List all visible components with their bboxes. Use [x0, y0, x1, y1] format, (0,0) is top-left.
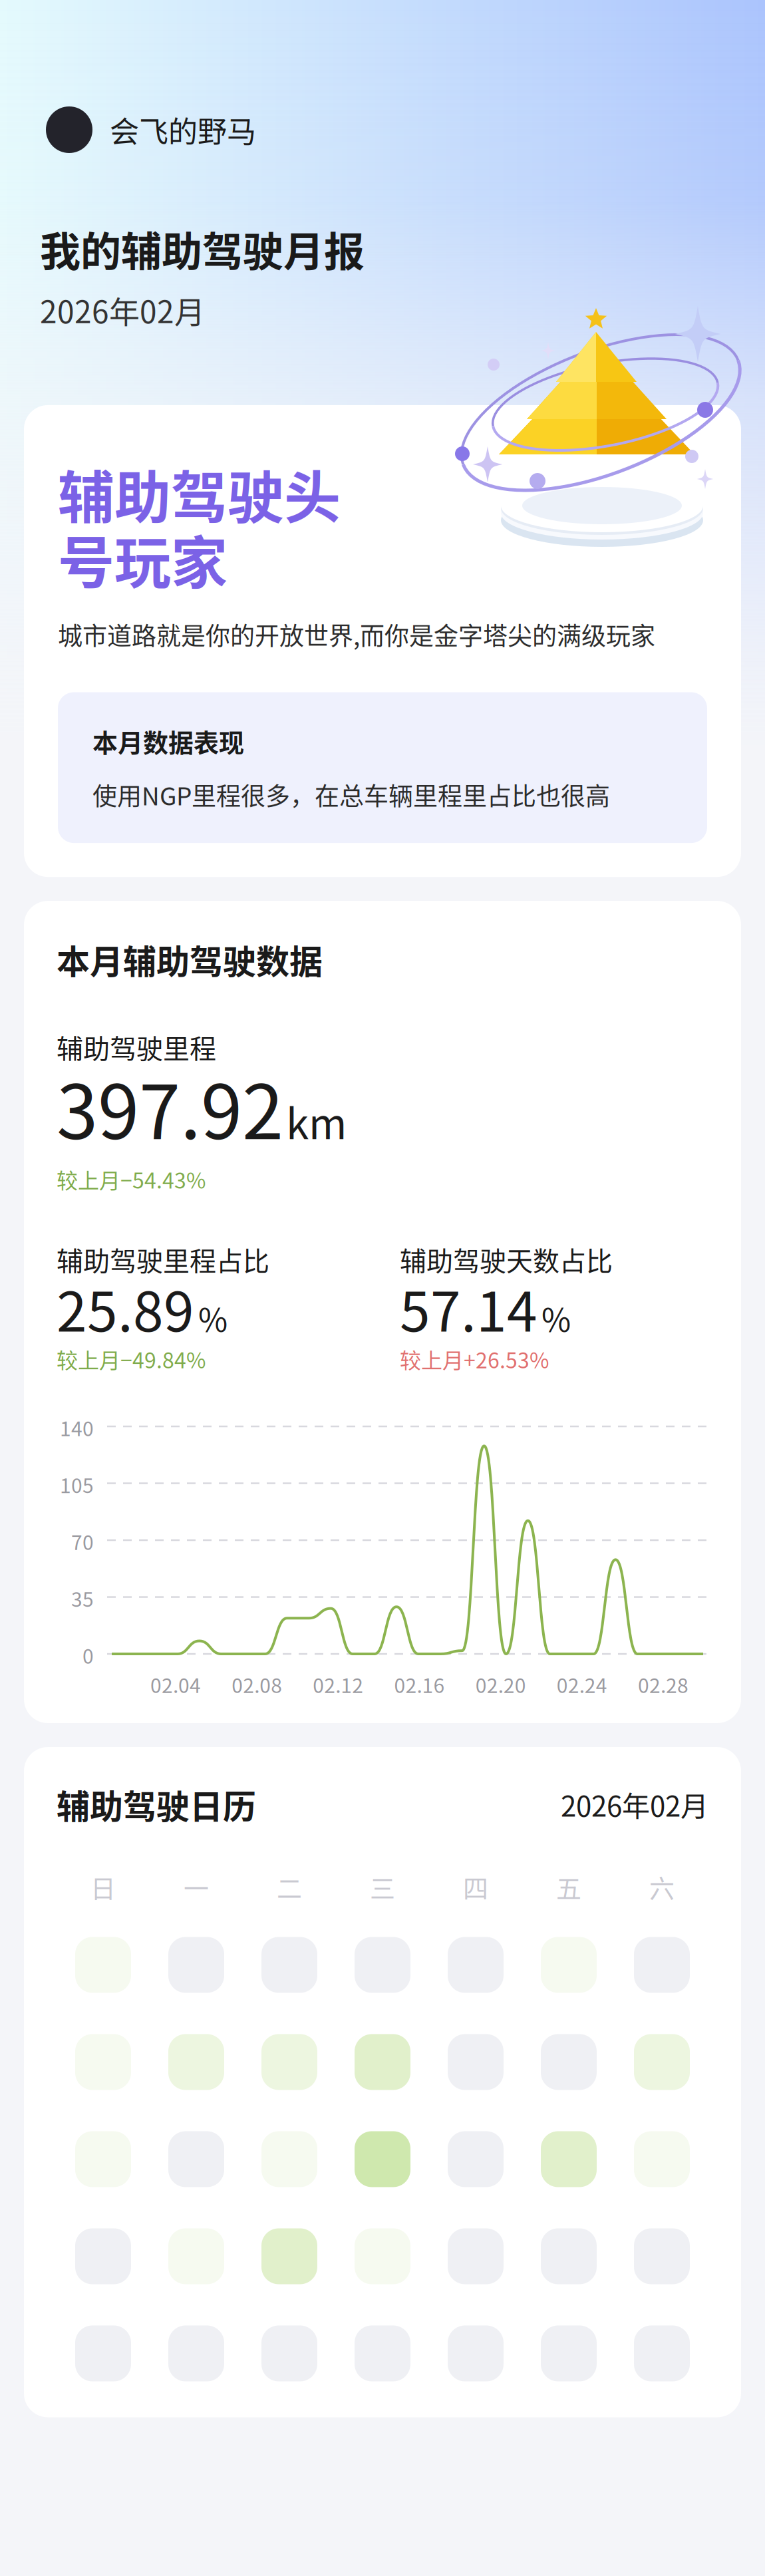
staticText: 辅助驾驶里程: [57, 1028, 216, 1066]
staticText: 我的辅助驾驶月报: [40, 220, 365, 278]
staticText: 140: [60, 1413, 94, 1442]
staticText: 日: [90, 1868, 116, 1905]
staticText: 辅助驾驶头: [58, 453, 341, 535]
staticText: 一: [184, 1868, 209, 1905]
staticText: 较上月+26.53%: [400, 1344, 549, 1374]
staticText: 2026年02月: [561, 1784, 708, 1825]
staticText: 35: [71, 1584, 94, 1613]
staticText: 70: [71, 1527, 94, 1556]
staticText: 号玩家: [58, 518, 228, 600]
staticText: 本月辅助驾驶数据: [57, 935, 323, 984]
staticText: 397.92: [57, 1053, 283, 1161]
staticText: 二: [277, 1868, 302, 1905]
staticText: 0: [82, 1641, 94, 1669]
staticText: 2026年02月: [40, 288, 205, 332]
staticText: 辅助驾驶天数占比: [400, 1240, 613, 1278]
staticText: 四: [463, 1868, 488, 1905]
staticText: 六: [649, 1868, 675, 1905]
staticText: 辅助驾驶日历: [57, 1780, 256, 1828]
staticText: 三: [370, 1868, 395, 1905]
staticText: 02.20: [475, 1670, 526, 1699]
staticText: 02.24: [557, 1670, 607, 1699]
staticText: 会飞的野马: [110, 109, 256, 151]
staticText: 02.16: [394, 1670, 445, 1699]
staticText: 五: [556, 1868, 581, 1905]
staticText: 使用NGP里程很多，在总车辆里程里占比也很高: [92, 777, 610, 812]
staticText: 02.08: [232, 1670, 282, 1699]
staticText: 城市道路就是你的开放世界,而你是金字塔尖的满级玩家: [58, 617, 655, 652]
staticText: 本月数据表现: [92, 723, 244, 759]
staticText: 02.28: [638, 1670, 688, 1699]
staticText: 57.14: [400, 1268, 537, 1347]
staticText: 105: [60, 1470, 94, 1499]
staticText: 02.12: [313, 1670, 363, 1699]
button[interactable]: 会飞的野马: [0, 106, 765, 153]
staticText: %: [198, 1295, 228, 1341]
staticText: 较上月−54.43%: [57, 1164, 206, 1195]
staticText: %: [541, 1295, 571, 1341]
staticText: 较上月−49.84%: [57, 1344, 206, 1374]
staticText: 02.04: [150, 1670, 201, 1699]
staticText: 25.89: [57, 1268, 194, 1347]
staticText: km: [286, 1091, 347, 1151]
staticText: 辅助驾驶里程占比: [57, 1240, 269, 1278]
